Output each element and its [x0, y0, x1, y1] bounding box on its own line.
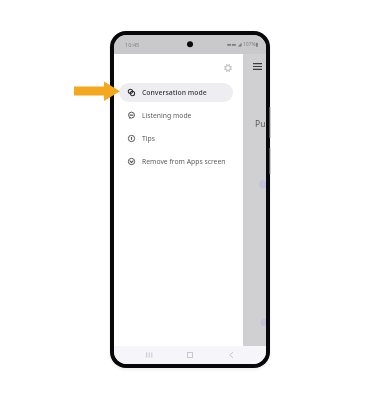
staticText: Listening mode [142, 111, 192, 120]
staticText: Remove from Apps screen [142, 157, 226, 166]
button[interactable]: Tips [119, 129, 233, 148]
staticText: Tips [142, 134, 155, 143]
button[interactable]: Home [181, 346, 199, 364]
button[interactable]: Settings [224, 64, 232, 72]
button[interactable]: Recents [140, 346, 158, 364]
button[interactable]: Remove from Apps screen [119, 152, 233, 171]
staticText: ▬▬ ◢ 107%▮ [227, 41, 259, 48]
staticText: 10:45 [125, 41, 140, 49]
button[interactable]: Listening mode [119, 106, 233, 125]
button[interactable]: Back [222, 346, 240, 364]
button[interactable]: Conversation mode [119, 83, 233, 102]
button[interactable]: Menu [253, 62, 262, 71]
staticText: Conversation mode [142, 88, 207, 97]
staticText: Pul [255, 118, 266, 130]
